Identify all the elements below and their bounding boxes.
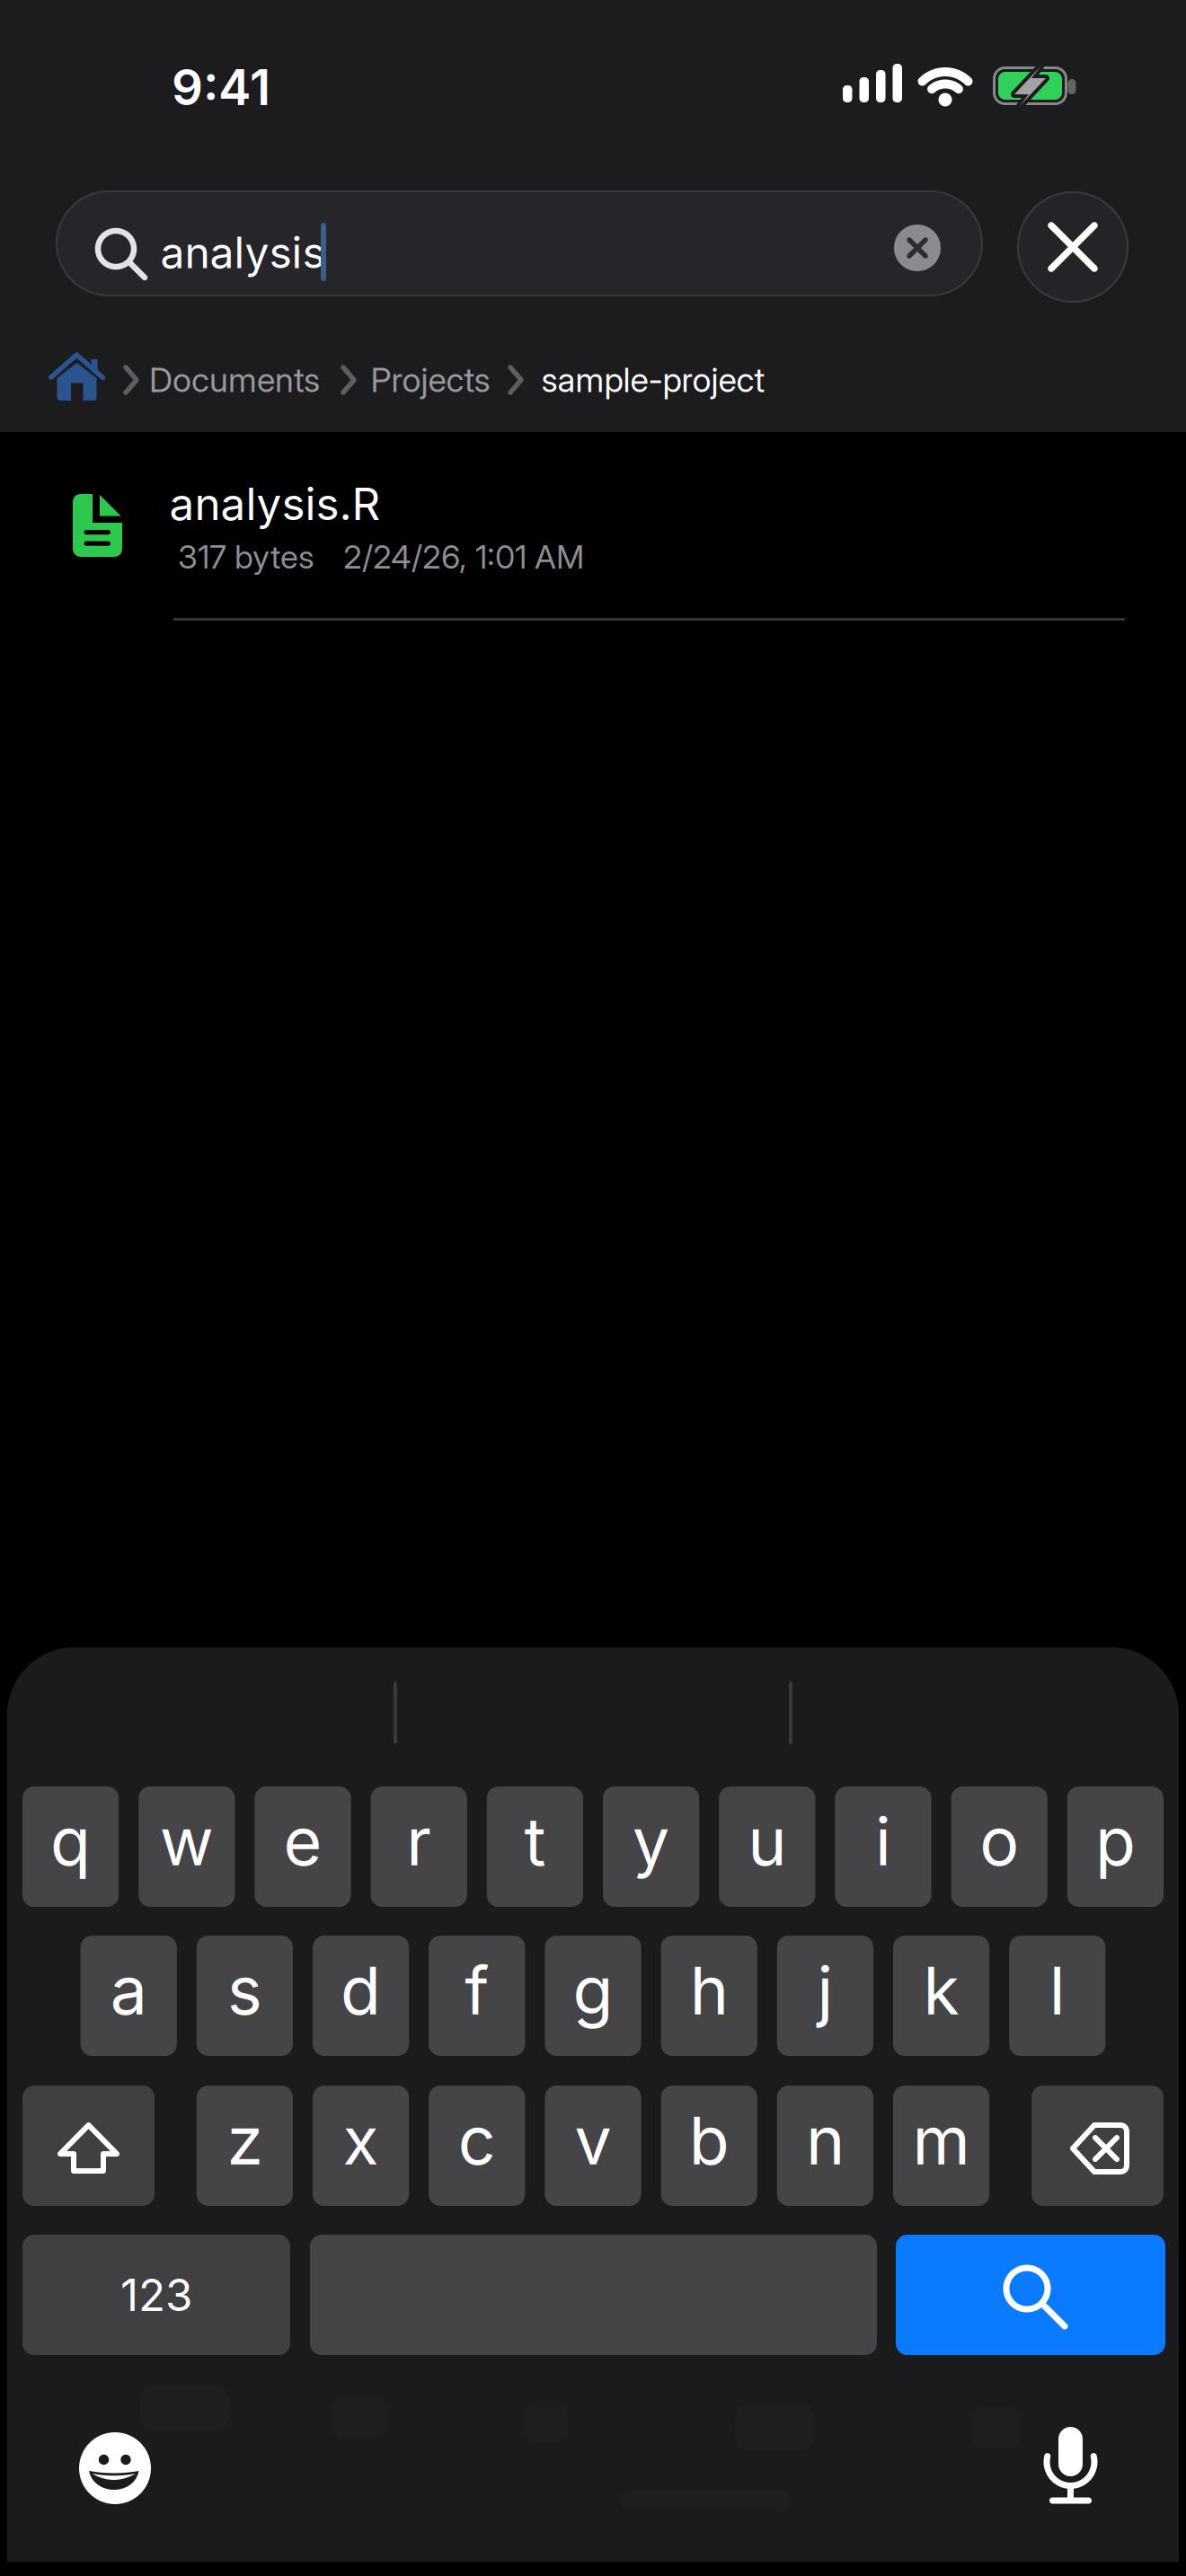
button[interactable]: z <box>197 2086 293 2206</box>
button[interactable]: e <box>255 1786 351 1907</box>
button[interactable]: Projects <box>371 360 490 400</box>
button[interactable]: Delete <box>1031 2086 1164 2206</box>
staticText: n <box>806 2100 844 2180</box>
staticText: g <box>573 1951 613 2030</box>
staticText: u <box>748 1801 786 1881</box>
button[interactable]: Search <box>56 190 983 296</box>
staticText: i <box>875 1801 891 1881</box>
staticText: v <box>575 2100 611 2180</box>
staticText: b <box>689 2100 729 2180</box>
staticText: 9:41 <box>172 57 270 117</box>
button[interactable]: y <box>603 1786 699 1907</box>
staticText: w <box>160 1801 214 1881</box>
button[interactable]: l <box>1009 1936 1105 2056</box>
button[interactable]: b <box>661 2086 757 2206</box>
staticText: y <box>633 1801 669 1881</box>
staticText: 317 bytes <box>178 537 314 576</box>
staticText: x <box>343 2100 379 2180</box>
staticText: q <box>50 1801 91 1881</box>
staticText: f <box>465 1951 489 2030</box>
button[interactable]: s <box>197 1936 293 2056</box>
button[interactable]: n <box>777 2086 873 2206</box>
staticText: 123 <box>120 2268 192 2322</box>
staticText: o <box>980 1801 1019 1881</box>
button[interactable]: u <box>719 1786 815 1907</box>
staticText: h <box>690 1951 728 2030</box>
button[interactable]: q <box>22 1786 119 1907</box>
button[interactable]: Emoji <box>79 2432 151 2504</box>
button[interactable]: f <box>429 1936 525 2056</box>
staticText: Documents <box>149 360 320 400</box>
button[interactable]: v <box>545 2086 641 2206</box>
staticText: d <box>341 1951 381 2030</box>
button[interactable]: h <box>661 1936 757 2056</box>
button[interactable]: i <box>835 1786 931 1907</box>
button[interactable]: Documents <box>149 360 320 400</box>
staticText: r <box>406 1801 431 1881</box>
button[interactable]: Numbers <box>22 2235 290 2355</box>
button[interactable]: Dictate <box>1044 2422 1097 2508</box>
button[interactable]: p <box>1067 1786 1164 1907</box>
button[interactable]: w <box>139 1786 235 1907</box>
staticText: p <box>1095 1801 1136 1881</box>
staticText: 2/24/26, 1:01 AM <box>343 537 584 576</box>
staticText: s <box>227 1951 262 2030</box>
button[interactable]: o <box>951 1786 1047 1907</box>
staticText: z <box>227 2100 263 2180</box>
button[interactable]: Search <box>896 2235 1165 2355</box>
button[interactable]: x <box>313 2086 409 2206</box>
staticText: sample-project <box>541 360 765 400</box>
staticText: e <box>283 1801 322 1881</box>
button[interactable]: Clear search text <box>894 225 941 271</box>
button[interactable]: m <box>893 2086 989 2206</box>
staticText: analysis.R <box>169 477 381 531</box>
button[interactable]: analysis.R <box>0 442 1186 622</box>
staticText: k <box>923 1951 959 2030</box>
button[interactable]: Shift <box>22 2086 155 2206</box>
button[interactable]: j <box>777 1936 873 2056</box>
button[interactable]: k <box>893 1936 989 2056</box>
staticText: j <box>817 1951 833 2030</box>
staticText: analysis <box>160 226 325 279</box>
button[interactable]: g <box>545 1936 641 2056</box>
button[interactable]: d <box>313 1936 409 2056</box>
button[interactable]: c <box>429 2086 525 2206</box>
button[interactable]: r <box>371 1786 467 1907</box>
button[interactable]: a <box>81 1936 177 2056</box>
staticText: a <box>110 1951 147 2030</box>
staticText: m <box>913 2100 970 2180</box>
button[interactable]: Close search <box>1017 191 1128 303</box>
staticText: c <box>458 2100 496 2180</box>
staticText: l <box>1049 1951 1065 2030</box>
staticText: Projects <box>371 360 490 400</box>
staticText: t <box>524 1801 546 1881</box>
button[interactable]: Home <box>49 353 108 407</box>
button[interactable]: t <box>487 1786 583 1907</box>
